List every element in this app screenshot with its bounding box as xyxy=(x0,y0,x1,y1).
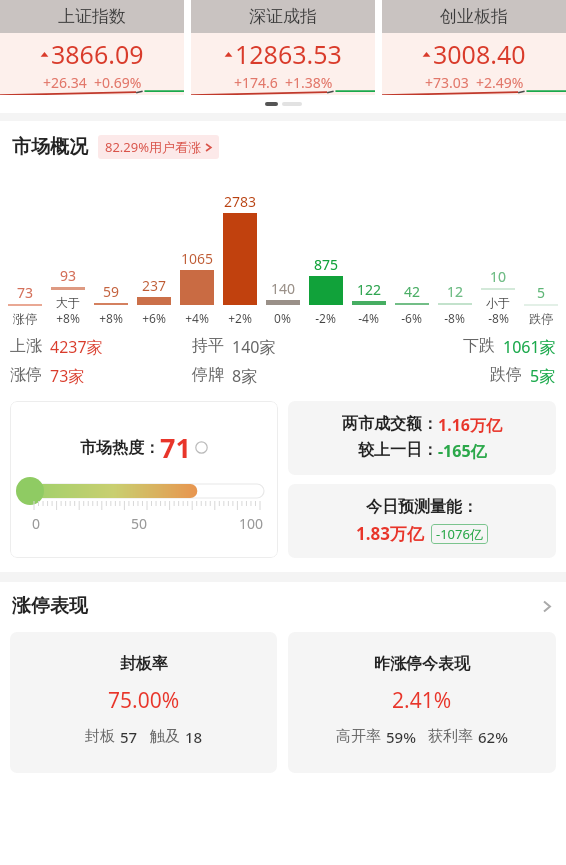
staticText: -8% xyxy=(488,310,509,326)
staticText: -2% xyxy=(315,310,336,326)
staticText: 涨停 xyxy=(13,311,37,326)
staticText: 创业板指 xyxy=(440,6,508,27)
staticText: 122 xyxy=(357,280,382,299)
staticText: 高开率 xyxy=(336,727,381,746)
staticText: 两市成交额： xyxy=(342,414,438,434)
staticText: 获利率 xyxy=(428,727,473,746)
button[interactable]: 59 xyxy=(89,190,132,326)
staticText: 下跌 xyxy=(463,336,495,356)
staticText: -6% xyxy=(401,310,422,326)
staticText: +4% xyxy=(185,310,209,326)
button[interactable]: 140 xyxy=(261,190,304,326)
staticText: 昨涨停今表现 xyxy=(374,654,470,674)
button[interactable]: 昨涨停今表现 xyxy=(288,632,556,773)
staticText: 1061家 xyxy=(503,336,556,358)
staticText: 62% xyxy=(478,727,508,747)
button[interactable]: 今日预测量能： xyxy=(288,484,556,558)
staticText: +73.03 xyxy=(425,73,469,92)
staticText: 50 xyxy=(131,514,148,533)
button[interactable]: 5 xyxy=(519,191,562,326)
staticText: 3008.40 xyxy=(433,37,526,71)
button[interactable]: 2783 xyxy=(218,190,261,326)
staticText: 跌停 xyxy=(529,311,553,326)
staticText: 0% xyxy=(274,310,291,326)
staticText: 1065 xyxy=(181,249,214,268)
staticText: 今日预测量能： xyxy=(366,497,478,517)
staticText: 73家 xyxy=(50,365,85,387)
staticText: 市场概况 xyxy=(12,135,88,159)
button[interactable]: 封板率 xyxy=(10,632,277,773)
button[interactable]: 深证成指 xyxy=(191,0,375,95)
staticText: 100 xyxy=(239,514,264,533)
button[interactable]: 1065 xyxy=(175,190,218,326)
staticText: -4% xyxy=(358,310,379,326)
staticText: 小于 xyxy=(486,295,510,310)
staticText: +2% xyxy=(228,310,252,326)
button[interactable]: 122 xyxy=(347,190,390,326)
other: Help xyxy=(195,441,208,454)
staticText: 涨停 xyxy=(10,365,42,385)
staticText: 市场热度： xyxy=(80,438,160,458)
staticText: 12863.53 xyxy=(235,37,342,71)
staticText: +6% xyxy=(142,310,166,326)
staticText: 1.83万亿 xyxy=(356,522,424,545)
staticText: +2.49% xyxy=(476,73,524,92)
staticText: 4237家 xyxy=(50,336,103,358)
staticText: 82.29%用户看涨 xyxy=(105,138,202,156)
staticText: 237 xyxy=(142,276,167,295)
button[interactable]: 73 xyxy=(4,191,46,326)
button[interactable]: 82.29%用户看涨 xyxy=(98,135,219,159)
button[interactable]: 上证指数 xyxy=(0,0,184,95)
staticText: 5 xyxy=(537,283,546,302)
staticText: +174.6 xyxy=(234,73,278,92)
staticText: -1076亿 xyxy=(436,525,483,543)
staticText: 10 xyxy=(490,267,507,286)
button[interactable]: 42 xyxy=(390,190,433,326)
staticText: 140家 xyxy=(232,336,276,358)
staticText: 875 xyxy=(314,255,339,274)
staticText: 8家 xyxy=(232,365,258,387)
staticText: 73 xyxy=(17,283,34,302)
staticText: 57 xyxy=(120,727,138,747)
staticText: 上证指数 xyxy=(58,6,126,27)
staticText: 93 xyxy=(60,266,77,285)
staticText: -8% xyxy=(444,310,465,326)
button[interactable]: 10 xyxy=(476,175,519,326)
staticText: 涨停表现 xyxy=(12,594,88,618)
staticText: 42 xyxy=(404,282,421,301)
staticText: -165亿 xyxy=(438,440,487,462)
staticText: 封板 xyxy=(85,727,115,746)
staticText: 上涨 xyxy=(10,336,42,356)
staticText: 停牌 xyxy=(192,365,224,385)
staticText: 0 xyxy=(32,514,41,533)
button[interactable]: 涨停表现 xyxy=(0,594,566,618)
staticText: 持平 xyxy=(192,336,224,356)
button[interactable]: 12 xyxy=(433,190,476,326)
staticText: 触及 xyxy=(150,727,180,746)
staticText: 59 xyxy=(103,282,120,301)
staticText: 12 xyxy=(447,282,464,301)
staticText: 5家 xyxy=(530,365,556,387)
staticText: +8% xyxy=(56,310,80,326)
button[interactable]: 市场热度： xyxy=(10,401,278,558)
staticText: 跌停 xyxy=(490,365,522,385)
button[interactable]: 875 xyxy=(304,190,347,326)
staticText: 封板率 xyxy=(120,654,168,674)
staticText: 深证成指 xyxy=(249,6,317,27)
staticText: 2783 xyxy=(224,192,257,211)
staticText: 1.16万亿 xyxy=(438,414,502,436)
button[interactable]: 创业板指 xyxy=(382,0,566,95)
button[interactable]: 93 xyxy=(46,175,89,326)
staticText: 3866.09 xyxy=(51,37,144,71)
staticText: 71 xyxy=(160,429,191,466)
staticText: 较上一日： xyxy=(358,440,438,460)
staticText: 18 xyxy=(185,727,203,747)
staticText: 大于 xyxy=(56,295,80,310)
staticText: 59% xyxy=(386,727,416,747)
button[interactable]: 237 xyxy=(132,190,175,326)
staticText: +0.69% xyxy=(94,73,142,92)
staticText: +8% xyxy=(99,310,123,326)
staticText: +1.38% xyxy=(285,73,333,92)
button[interactable]: 两市成交额： xyxy=(288,401,556,475)
staticText: 75.00% xyxy=(108,686,180,715)
